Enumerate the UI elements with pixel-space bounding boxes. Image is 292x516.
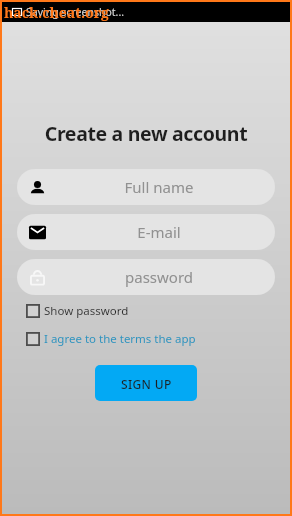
staticText: I agree to the terms the app: [44, 331, 196, 347]
staticText: Full name: [46, 177, 272, 197]
button[interactable]: SIGN UP: [95, 365, 197, 401]
staticText: Saving screenshot...: [26, 5, 125, 19]
other: Screenshot: [12, 7, 22, 17]
staticText: Show password: [44, 303, 129, 319]
staticText: password: [46, 267, 272, 287]
button[interactable]: I agree to the terms the app: [26, 331, 266, 347]
staticText: hack.cheat.org: [4, 3, 109, 22]
button[interactable]: Full name: [17, 169, 275, 205]
button[interactable]: Show password: [26, 303, 266, 319]
staticText: Create a new account: [2, 120, 290, 147]
button[interactable]: password: [17, 259, 275, 295]
staticText: E-mail: [46, 222, 272, 242]
button[interactable]: E-mail: [17, 214, 275, 250]
staticText: SIGN UP: [121, 376, 172, 392]
